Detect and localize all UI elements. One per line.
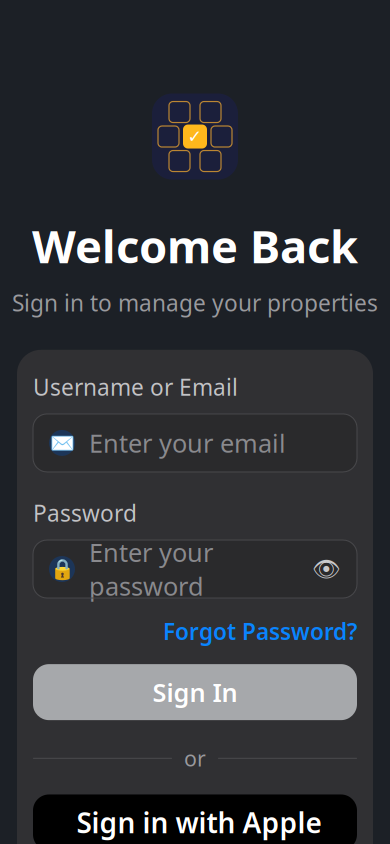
staticText: Enter your email <box>89 426 286 460</box>
button[interactable]: ✉️ <box>33 414 357 472</box>
staticText: 👁 <box>312 556 341 582</box>
staticText: ✉️ <box>49 431 74 454</box>
button[interactable]: Forgot Password? <box>163 616 357 646</box>
staticText: Sign in to manage your properties <box>12 288 378 318</box>
button[interactable]: Sign In <box>33 664 357 720</box>
staticText: Username or Email <box>33 372 238 402</box>
staticText: Sign in with Apple <box>76 804 321 841</box>
staticText: Sign In <box>152 675 237 709</box>
button[interactable] <box>33 794 357 844</box>
staticText: 🔒 <box>49 558 74 580</box>
staticText: or <box>184 744 206 772</box>
staticText: Welcome Back <box>32 215 358 276</box>
staticText: Enter your password <box>89 535 213 603</box>
staticText: ✓ <box>187 127 202 146</box>
staticText: Forgot Password? <box>163 616 357 646</box>
button[interactable]: 🔒 <box>33 540 357 598</box>
staticText: Password <box>33 498 137 528</box>
